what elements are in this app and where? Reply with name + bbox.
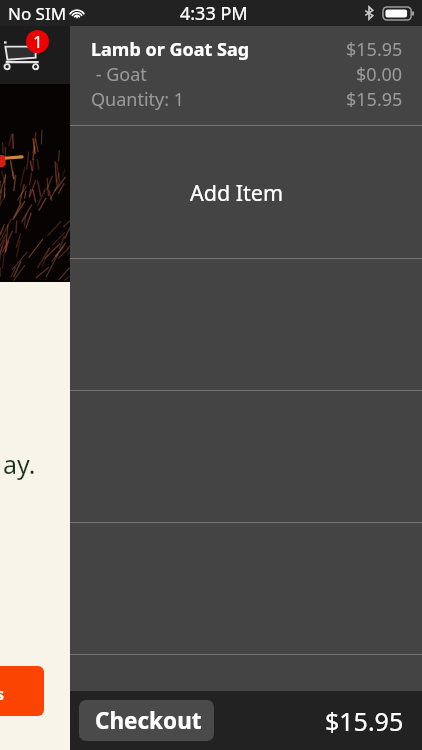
staticText: Quantity: 1 bbox=[91, 87, 185, 112]
staticText: Checkout bbox=[95, 705, 202, 736]
staticText: $15.95 bbox=[325, 704, 404, 738]
staticText: $15.95 bbox=[346, 37, 403, 62]
staticText: ay. bbox=[3, 447, 36, 481]
staticText: $15.95 bbox=[346, 87, 403, 112]
staticText: - Goat bbox=[91, 62, 147, 87]
staticText: Add Item bbox=[190, 178, 284, 207]
staticText: s bbox=[0, 683, 5, 705]
staticText: No SIM bbox=[8, 2, 67, 25]
button[interactable]: Add Item bbox=[70, 126, 422, 258]
button[interactable]: Checkout bbox=[79, 700, 214, 741]
staticText: 4:33 PM bbox=[180, 1, 248, 26]
staticText: $0.00 bbox=[356, 62, 403, 87]
button[interactable]: Lamb or Goat Sag bbox=[70, 26, 422, 125]
button[interactable]: Shopping cart bbox=[0, 26, 70, 84]
staticText: 1 bbox=[33, 30, 43, 53]
button[interactable]: Order now bbox=[0, 666, 44, 716]
staticText: Lamb or Goat Sag bbox=[91, 37, 250, 62]
